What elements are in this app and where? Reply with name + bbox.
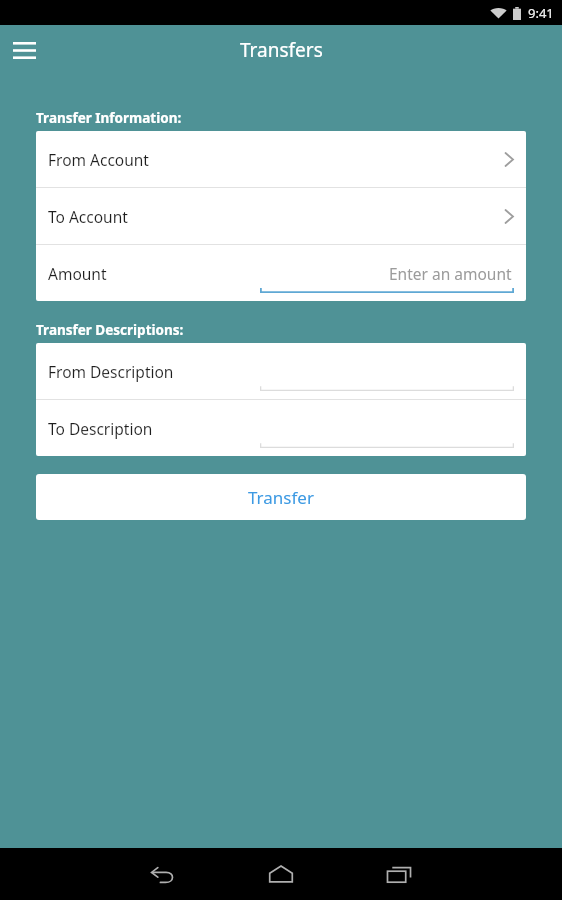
button[interactable]: Open navigation menu (4, 30, 44, 70)
button[interactable]: Home (245, 848, 317, 900)
staticText: From Account (48, 149, 149, 170)
button[interactable]: To Description (36, 400, 526, 456)
staticText: Amount (48, 263, 107, 284)
staticText: From Description (48, 361, 174, 382)
staticText: 9:41 (528, 4, 554, 22)
staticText: To Description (48, 418, 153, 439)
button[interactable]: Back (127, 848, 199, 900)
staticText: Transfer (248, 486, 314, 509)
staticText: Enter an amount (389, 263, 512, 284)
button[interactable]: To Account (36, 188, 526, 244)
button[interactable]: Transfer (36, 474, 526, 520)
button[interactable]: Amount (36, 245, 526, 301)
staticText: Transfer Descriptions: (36, 321, 184, 339)
staticText: Transfers (240, 37, 323, 63)
button[interactable]: From Description (36, 343, 526, 399)
button[interactable]: From Account (36, 131, 526, 187)
staticText: To Account (48, 206, 128, 227)
staticText: Transfer Information: (36, 109, 182, 127)
button[interactable]: Recent apps (363, 848, 435, 900)
